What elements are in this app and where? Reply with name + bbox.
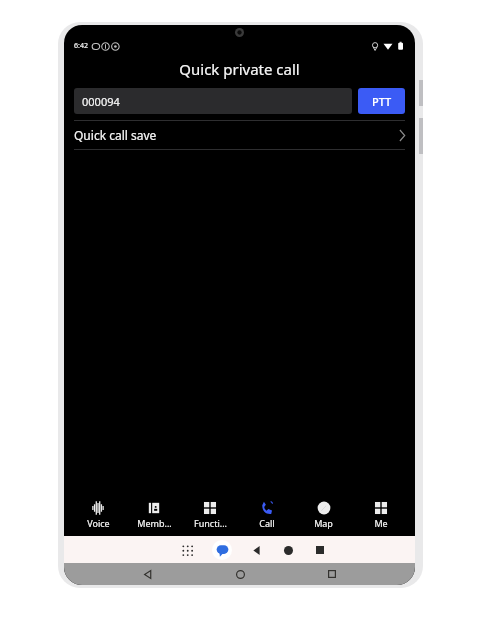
button[interactable]: Map [295, 498, 352, 532]
staticText: Me [374, 517, 388, 529]
button[interactable]: Functions [182, 498, 238, 532]
button[interactable]: Back [248, 542, 264, 558]
button[interactable]: Voice [70, 498, 126, 532]
staticText: Map [314, 517, 333, 529]
button[interactable]: Call [238, 498, 295, 532]
button[interactable]: Members [126, 498, 182, 532]
button[interactable]: Home [230, 564, 250, 584]
other: Functions [203, 501, 217, 515]
button[interactable]: Home [280, 542, 296, 558]
staticText: 6:42 [74, 41, 88, 51]
other: Call [260, 501, 274, 515]
button[interactable]: All apps [178, 541, 196, 559]
staticText: Call [259, 517, 275, 529]
staticText: Functi... [194, 517, 227, 529]
button[interactable]: Recent apps [322, 564, 342, 584]
other: Members [147, 501, 161, 515]
other: Voice [91, 501, 105, 515]
other: Functions [374, 501, 388, 515]
staticText: Voice [87, 517, 110, 529]
button[interactable]: Quick call save [64, 121, 415, 149]
staticText: Memb... [137, 517, 172, 529]
button[interactable]: PTT [358, 88, 405, 114]
staticText: PTT [372, 94, 392, 109]
button[interactable]: Recent apps [312, 542, 328, 558]
staticText: Quick private call [179, 59, 300, 79]
button[interactable]: Back [137, 564, 157, 584]
other: Map [317, 501, 331, 515]
staticText: 000094 [82, 94, 120, 109]
button[interactable]: Functions [352, 498, 409, 532]
button[interactable]: Messages [212, 540, 232, 560]
button[interactable]: 000094 [74, 88, 352, 114]
staticText: Quick call save [74, 127, 399, 143]
